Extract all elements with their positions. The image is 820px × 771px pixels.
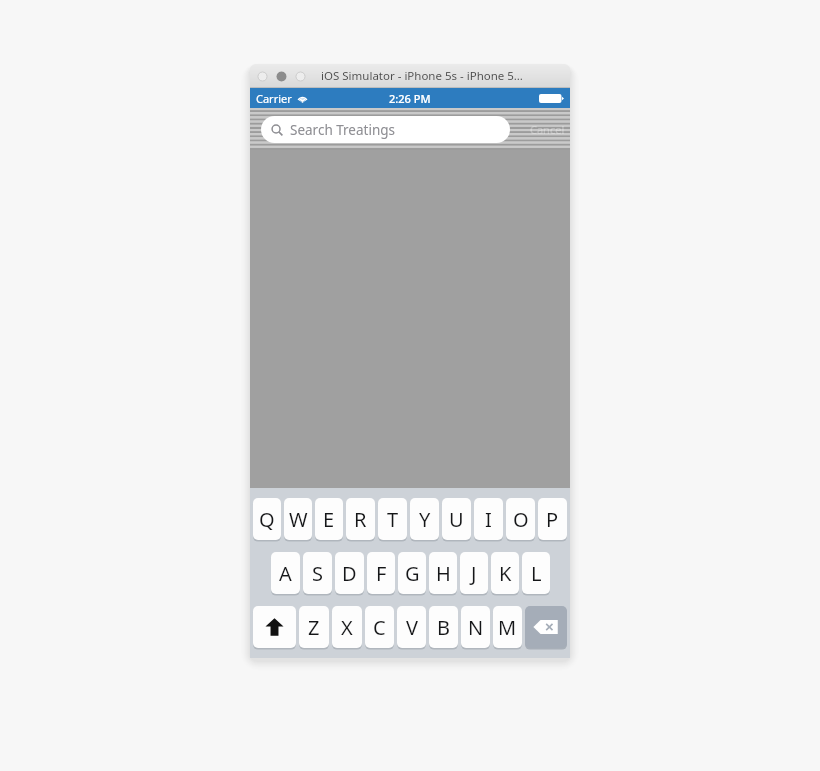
button[interactable]: Zoom window <box>295 71 306 82</box>
staticText: B <box>437 614 450 641</box>
button[interactable]: Q <box>253 498 281 540</box>
button[interactable]: D <box>335 552 364 594</box>
button[interactable]: Cancel <box>530 122 565 137</box>
staticText: A <box>279 560 292 587</box>
button[interactable]: Shift <box>253 606 296 648</box>
button[interactable]: Z <box>299 606 329 648</box>
staticText: R <box>354 506 367 533</box>
staticText: W <box>289 506 308 533</box>
button[interactable]: T <box>378 498 407 540</box>
button[interactable]: Search Treatings <box>261 116 510 143</box>
staticText: J <box>471 560 477 587</box>
button[interactable]: N <box>461 606 490 648</box>
button[interactable]: C <box>365 606 394 648</box>
button[interactable]: Close window <box>257 71 268 82</box>
button[interactable]: H <box>429 552 457 594</box>
button[interactable]: G <box>398 552 426 594</box>
staticText: Z <box>308 614 320 641</box>
staticText: K <box>499 560 512 587</box>
staticText: X <box>341 614 353 641</box>
button[interactable]: O <box>506 498 535 540</box>
button[interactable]: J <box>460 552 488 594</box>
button[interactable]: P <box>538 498 567 540</box>
staticText: U <box>449 506 464 533</box>
staticText: 2:26 PM <box>389 91 431 106</box>
button[interactable]: Y <box>410 498 439 540</box>
staticText: iOS Simulator - iPhone 5s - iPhone 5… <box>321 68 523 84</box>
button[interactable]: B <box>429 606 458 648</box>
button[interactable]: Backspace <box>525 606 567 648</box>
staticText: E <box>323 506 335 533</box>
staticText: P <box>546 506 559 533</box>
button[interactable]: Minimize window <box>276 71 287 82</box>
staticText: G <box>405 560 420 587</box>
button[interactable]: S <box>303 552 332 594</box>
button[interactable]: R <box>346 498 375 540</box>
staticText: F <box>376 560 387 587</box>
button[interactable]: V <box>397 606 426 648</box>
button[interactable]: K <box>491 552 519 594</box>
button[interactable]: L <box>522 552 550 594</box>
staticText: M <box>498 614 517 641</box>
staticText: Carrier <box>256 91 292 106</box>
button[interactable]: A <box>271 552 300 594</box>
staticText: N <box>468 614 484 641</box>
staticText: H <box>436 560 451 587</box>
staticText: Q <box>259 506 275 533</box>
button[interactable]: M <box>493 606 522 648</box>
staticText: V <box>406 614 418 641</box>
button[interactable]: U <box>442 498 471 540</box>
staticText: S <box>312 560 323 587</box>
button[interactable]: W <box>284 498 312 540</box>
staticText: I <box>485 506 492 533</box>
staticText: T <box>387 506 399 533</box>
staticText: Y <box>419 506 431 533</box>
button[interactable]: E <box>315 498 343 540</box>
button[interactable]: X <box>332 606 362 648</box>
staticText: O <box>513 506 529 533</box>
button[interactable]: F <box>367 552 395 594</box>
button[interactable]: I <box>474 498 503 540</box>
staticText: C <box>373 614 386 641</box>
staticText: D <box>342 560 357 587</box>
staticText: Search Treatings <box>290 121 396 139</box>
staticText: L <box>531 560 542 587</box>
